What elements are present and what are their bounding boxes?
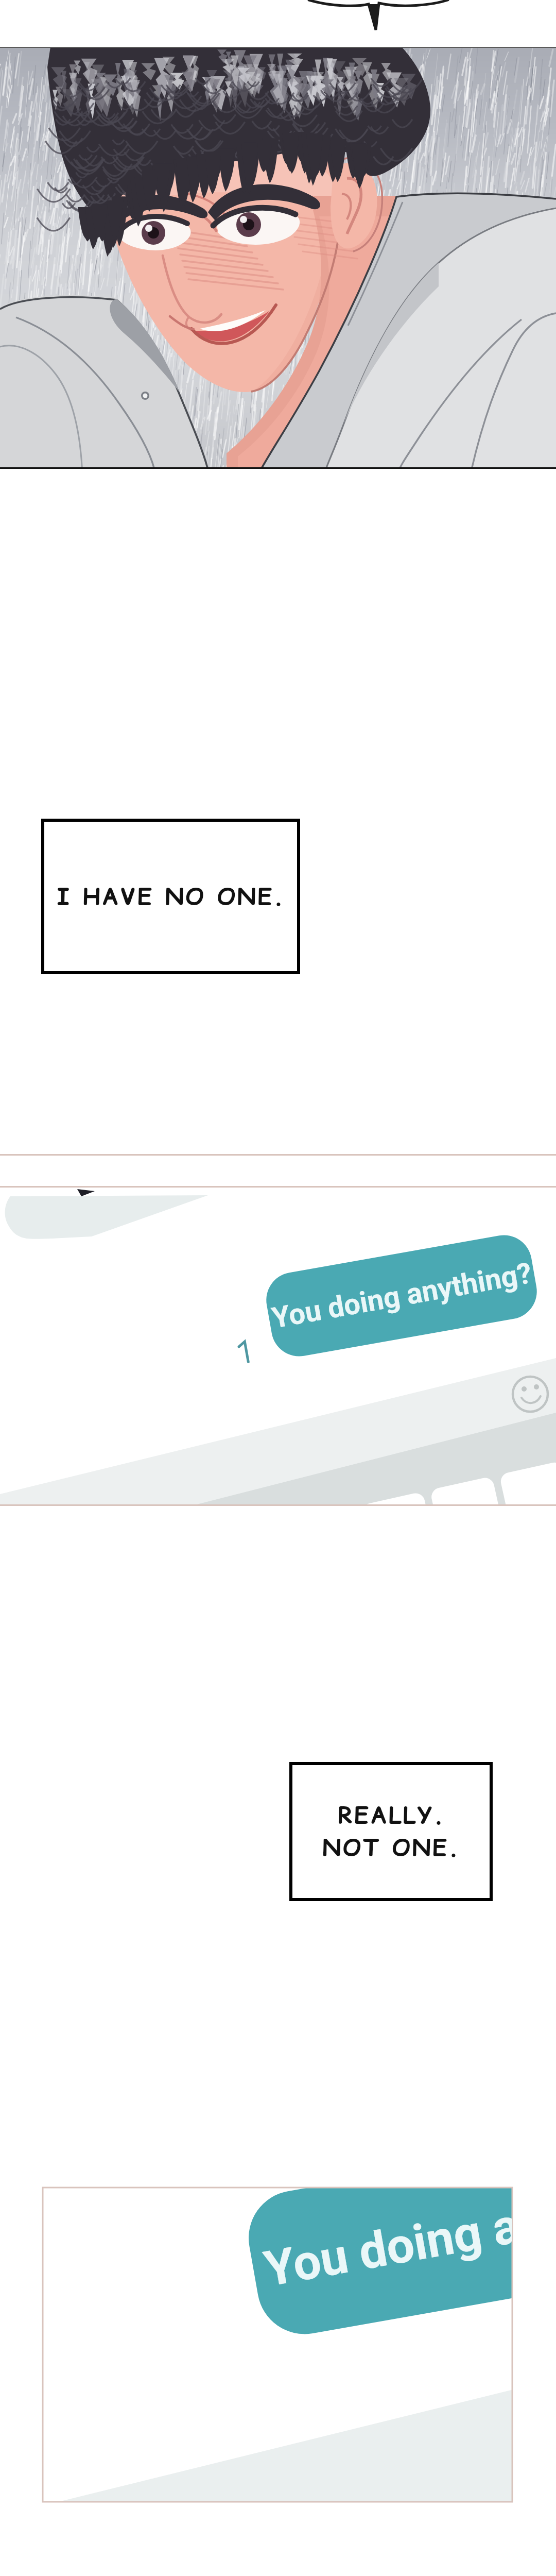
staticText: REALLY. <box>338 1799 445 1832</box>
button[interactable]: I HAVE NO ONE. <box>0 0 556 2576</box>
staticText: NOT ONE. <box>322 1832 460 1864</box>
button[interactable]: REALLY. <box>291 1764 491 1900</box>
staticText: You doing anything? <box>260 2188 512 2298</box>
staticText: I HAVE NO ONE. <box>57 880 285 913</box>
button[interactable]: I HAVE NO ONE. <box>43 820 299 973</box>
staticText: You doing anything? <box>269 1256 534 1335</box>
